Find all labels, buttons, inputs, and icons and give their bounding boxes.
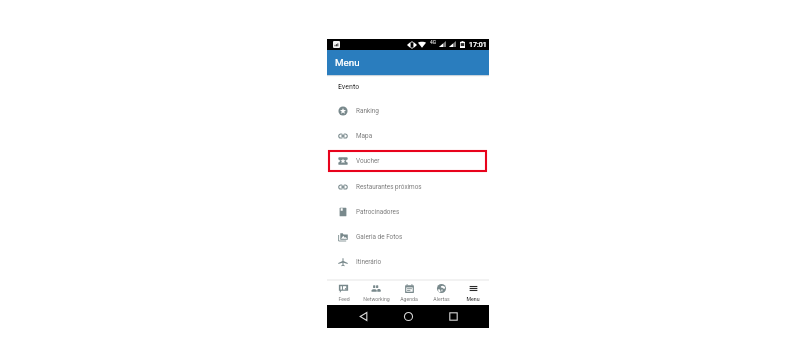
staticText: 17:01 (469, 41, 487, 49)
staticText: 4G (430, 40, 436, 46)
button[interactable]: Patrocinadores (327, 199, 489, 224)
button[interactable]: Galeria de Fotos (327, 224, 489, 249)
staticText: Patrocinadores (356, 208, 400, 216)
button[interactable]: Alertas (425, 280, 457, 304)
button[interactable]: Feed (327, 280, 360, 304)
button[interactable]: Mapa (327, 123, 489, 148)
button[interactable]: Home (399, 307, 417, 325)
staticText: Restaurantes próximos (356, 183, 422, 191)
staticText: Networking (363, 296, 390, 302)
button[interactable]: Recents (444, 307, 462, 325)
button[interactable]: Ranking (327, 98, 489, 123)
button[interactable]: Networking (360, 280, 393, 304)
staticText: Menu (335, 57, 360, 68)
button[interactable]: Agenda (393, 280, 425, 304)
staticText: Galeria de Fotos (356, 233, 403, 241)
staticText: Alertas (433, 296, 450, 302)
staticText: Ranking (356, 107, 379, 115)
staticText: Menu (466, 296, 480, 302)
staticText: Evento (338, 83, 360, 91)
button[interactable]: Itinerário (327, 249, 489, 274)
button[interactable]: Voucher (327, 148, 489, 173)
staticText: Feed (338, 296, 350, 302)
button[interactable]: Menu (457, 280, 489, 304)
staticText: Agenda (400, 296, 418, 302)
button[interactable]: Back (354, 307, 372, 325)
staticText: Voucher (356, 157, 380, 165)
button[interactable]: Restaurantes próximos (327, 174, 489, 199)
staticText: Itinerário (356, 258, 382, 266)
staticText: Mapa (356, 132, 373, 140)
